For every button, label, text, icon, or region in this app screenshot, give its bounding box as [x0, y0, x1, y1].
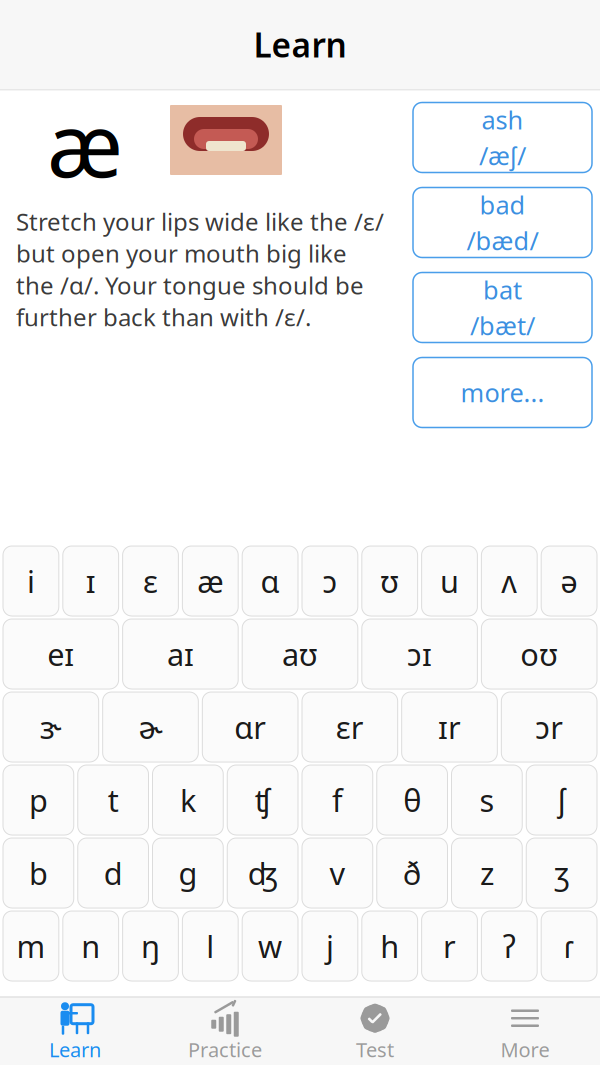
staticText: w — [258, 926, 282, 966]
staticText: Learn — [253, 22, 346, 67]
button[interactable]: ɛr — [302, 692, 398, 762]
staticText: n — [81, 926, 100, 966]
staticText: ɔɪ — [407, 634, 432, 674]
button[interactable]: ɚ — [103, 692, 198, 762]
button[interactable]: ɪr — [402, 692, 497, 762]
button[interactable]: More — [450, 997, 600, 1065]
button[interactable]: s — [451, 765, 522, 835]
button[interactable]: ð — [377, 838, 448, 908]
button[interactable]: aʊ — [242, 619, 358, 689]
staticText: aʊ — [282, 634, 318, 674]
staticText: ɛ — [143, 561, 158, 601]
button[interactable]: d — [78, 838, 149, 908]
staticText: /bæt/ — [470, 308, 535, 342]
button[interactable]: ɔɪ — [362, 619, 477, 689]
staticText: ɔr — [535, 707, 563, 747]
button[interactable]: l — [182, 911, 238, 981]
staticText: aɪ — [167, 634, 194, 674]
button[interactable]: p — [3, 765, 74, 835]
button[interactable]: more... — [413, 357, 592, 427]
button[interactable]: m — [3, 911, 59, 981]
button[interactable]: ɔ — [302, 546, 358, 616]
button[interactable]: ɔr — [501, 692, 597, 762]
button[interactable]: n — [63, 911, 119, 981]
staticText: ʊ — [380, 561, 399, 601]
button[interactable]: i — [3, 546, 59, 616]
staticText: ʧ — [255, 780, 271, 820]
staticText: u — [440, 561, 459, 601]
button[interactable]: k — [152, 765, 223, 835]
staticText: ʔ — [503, 926, 516, 966]
button[interactable]: ɛ — [123, 546, 178, 616]
button[interactable]: bad — [413, 187, 592, 257]
staticText: more... — [460, 376, 544, 409]
button[interactable]: t — [78, 765, 149, 835]
button[interactable]: Practice — [150, 997, 300, 1065]
button[interactable]: ʊ — [362, 546, 418, 616]
staticText: ʒ — [554, 853, 569, 893]
button[interactable]: u — [422, 546, 477, 616]
button[interactable]: b — [3, 838, 74, 908]
staticText: z — [480, 853, 494, 893]
button[interactable]: h — [362, 911, 418, 981]
button[interactable]: ʒ — [526, 838, 597, 908]
button[interactable]: v — [302, 838, 373, 908]
staticText: ɚ — [138, 707, 162, 747]
staticText: /æʃ/ — [479, 138, 526, 172]
button[interactable]: Test — [300, 997, 450, 1065]
button[interactable]: ɑr — [202, 692, 298, 762]
staticText: f — [332, 780, 343, 820]
button[interactable]: ɝ — [3, 692, 99, 762]
staticText: ŋ — [141, 926, 160, 966]
staticText: r — [443, 926, 456, 966]
button[interactable]: ʃ — [526, 765, 597, 835]
staticText: h — [380, 926, 399, 966]
staticText: k — [180, 780, 196, 820]
staticText: s — [479, 780, 494, 820]
button[interactable]: ʧ — [227, 765, 298, 835]
staticText: Practice — [188, 1036, 262, 1063]
button[interactable]: r — [422, 911, 477, 981]
staticText: Stretch your lips wide like the /ɛ/ but … — [16, 205, 384, 333]
staticText: p — [29, 780, 48, 820]
staticText: ʃ — [558, 780, 566, 820]
button[interactable]: ə — [541, 546, 597, 616]
button[interactable]: eɪ — [3, 619, 119, 689]
staticText: ash — [481, 103, 523, 136]
staticText: æ — [197, 561, 223, 601]
button[interactable]: ɑ — [242, 546, 298, 616]
staticText: m — [16, 926, 45, 966]
staticText: ð — [403, 853, 422, 893]
button[interactable]: f — [302, 765, 373, 835]
staticText: Test — [356, 1036, 394, 1063]
staticText: t — [108, 780, 119, 820]
staticText: ɪ — [86, 561, 96, 601]
staticText: ɛr — [336, 707, 364, 747]
button[interactable]: æ — [182, 546, 238, 616]
button[interactable]: w — [242, 911, 298, 981]
button[interactable]: oʊ — [481, 619, 597, 689]
staticText: eɪ — [47, 634, 74, 674]
staticText: æ — [47, 85, 123, 201]
button[interactable]: ʔ — [481, 911, 537, 981]
staticText: g — [178, 853, 197, 893]
button[interactable]: θ — [377, 765, 448, 835]
staticText: i — [27, 561, 35, 601]
button[interactable]: bat — [413, 272, 592, 342]
button[interactable]: ŋ — [123, 911, 178, 981]
staticText: ə — [561, 561, 578, 601]
staticText: ɪr — [438, 707, 461, 747]
button[interactable]: j — [302, 911, 358, 981]
button[interactable]: ɾ — [541, 911, 597, 981]
staticText: /bæd/ — [466, 223, 538, 257]
staticText: ʌ — [501, 561, 517, 601]
button[interactable]: ʤ — [227, 838, 298, 908]
button[interactable]: aɪ — [123, 619, 238, 689]
button[interactable]: ash — [413, 102, 592, 172]
button[interactable]: ʌ — [481, 546, 537, 616]
button[interactable]: g — [152, 838, 223, 908]
staticText: ɑ — [261, 561, 280, 601]
button[interactable]: ɪ — [63, 546, 119, 616]
button[interactable]: Learn — [0, 997, 150, 1065]
button[interactable]: z — [451, 838, 522, 908]
